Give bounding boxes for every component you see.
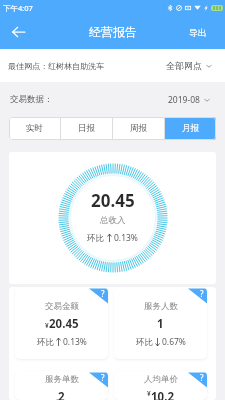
staticText: 周报 bbox=[130, 123, 147, 134]
button[interactable]: ? bbox=[15, 371, 108, 400]
staticText: 服务人数 bbox=[144, 301, 178, 312]
staticText: 20.45 bbox=[49, 316, 79, 332]
button[interactable]: 2019-08 bbox=[168, 94, 210, 106]
staticText: ¥ bbox=[45, 321, 49, 330]
staticText: 环比 bbox=[37, 337, 54, 348]
staticText: 交易数据： bbox=[10, 94, 53, 105]
button[interactable]: ? bbox=[15, 287, 108, 359]
staticText: 全部网点 bbox=[166, 60, 202, 71]
button[interactable]: ? bbox=[114, 371, 207, 400]
staticText: 总收入 bbox=[100, 215, 126, 226]
staticText: 0.13% bbox=[114, 232, 138, 244]
staticText: ¥ bbox=[147, 389, 151, 398]
staticText: 2019-08 bbox=[168, 94, 200, 106]
button[interactable]: 实时 bbox=[9, 117, 60, 140]
staticText: 经营报告 bbox=[89, 24, 137, 39]
button[interactable]: Back bbox=[4, 18, 32, 46]
button[interactable]: 全部网点 bbox=[166, 60, 212, 71]
staticText: ? bbox=[101, 288, 105, 299]
staticText: 月报 bbox=[182, 123, 199, 134]
staticText: 环比 bbox=[87, 233, 104, 244]
button[interactable]: ? bbox=[114, 287, 207, 359]
staticText: 0.67% bbox=[162, 336, 186, 348]
staticText: 服务单数 bbox=[45, 374, 79, 385]
staticText: 人均单价 bbox=[144, 374, 178, 385]
button[interactable]: 周报 bbox=[113, 117, 164, 140]
staticText: ? bbox=[101, 372, 105, 383]
staticText: 10.2 bbox=[151, 389, 174, 400]
button[interactable]: 导出 bbox=[189, 27, 207, 38]
staticText: ? bbox=[200, 288, 204, 299]
staticText: 1 bbox=[157, 316, 164, 332]
staticText: 环比 bbox=[136, 337, 153, 348]
staticText: ? bbox=[200, 372, 204, 383]
staticText: 日报 bbox=[78, 123, 95, 134]
button[interactable]: 日报 bbox=[61, 117, 112, 140]
staticText: 0.13% bbox=[63, 336, 87, 348]
staticText: 下午4:07 bbox=[3, 3, 33, 13]
button[interactable]: 月报 bbox=[165, 117, 216, 140]
staticText: 导出 bbox=[189, 27, 207, 38]
staticText: 最佳网点：红树林自助洗车 bbox=[8, 61, 104, 71]
staticText: 实时 bbox=[26, 123, 43, 134]
staticText: 2 bbox=[58, 389, 65, 400]
staticText: 交易金额 bbox=[45, 301, 79, 312]
staticText: 20.45 bbox=[91, 189, 135, 212]
